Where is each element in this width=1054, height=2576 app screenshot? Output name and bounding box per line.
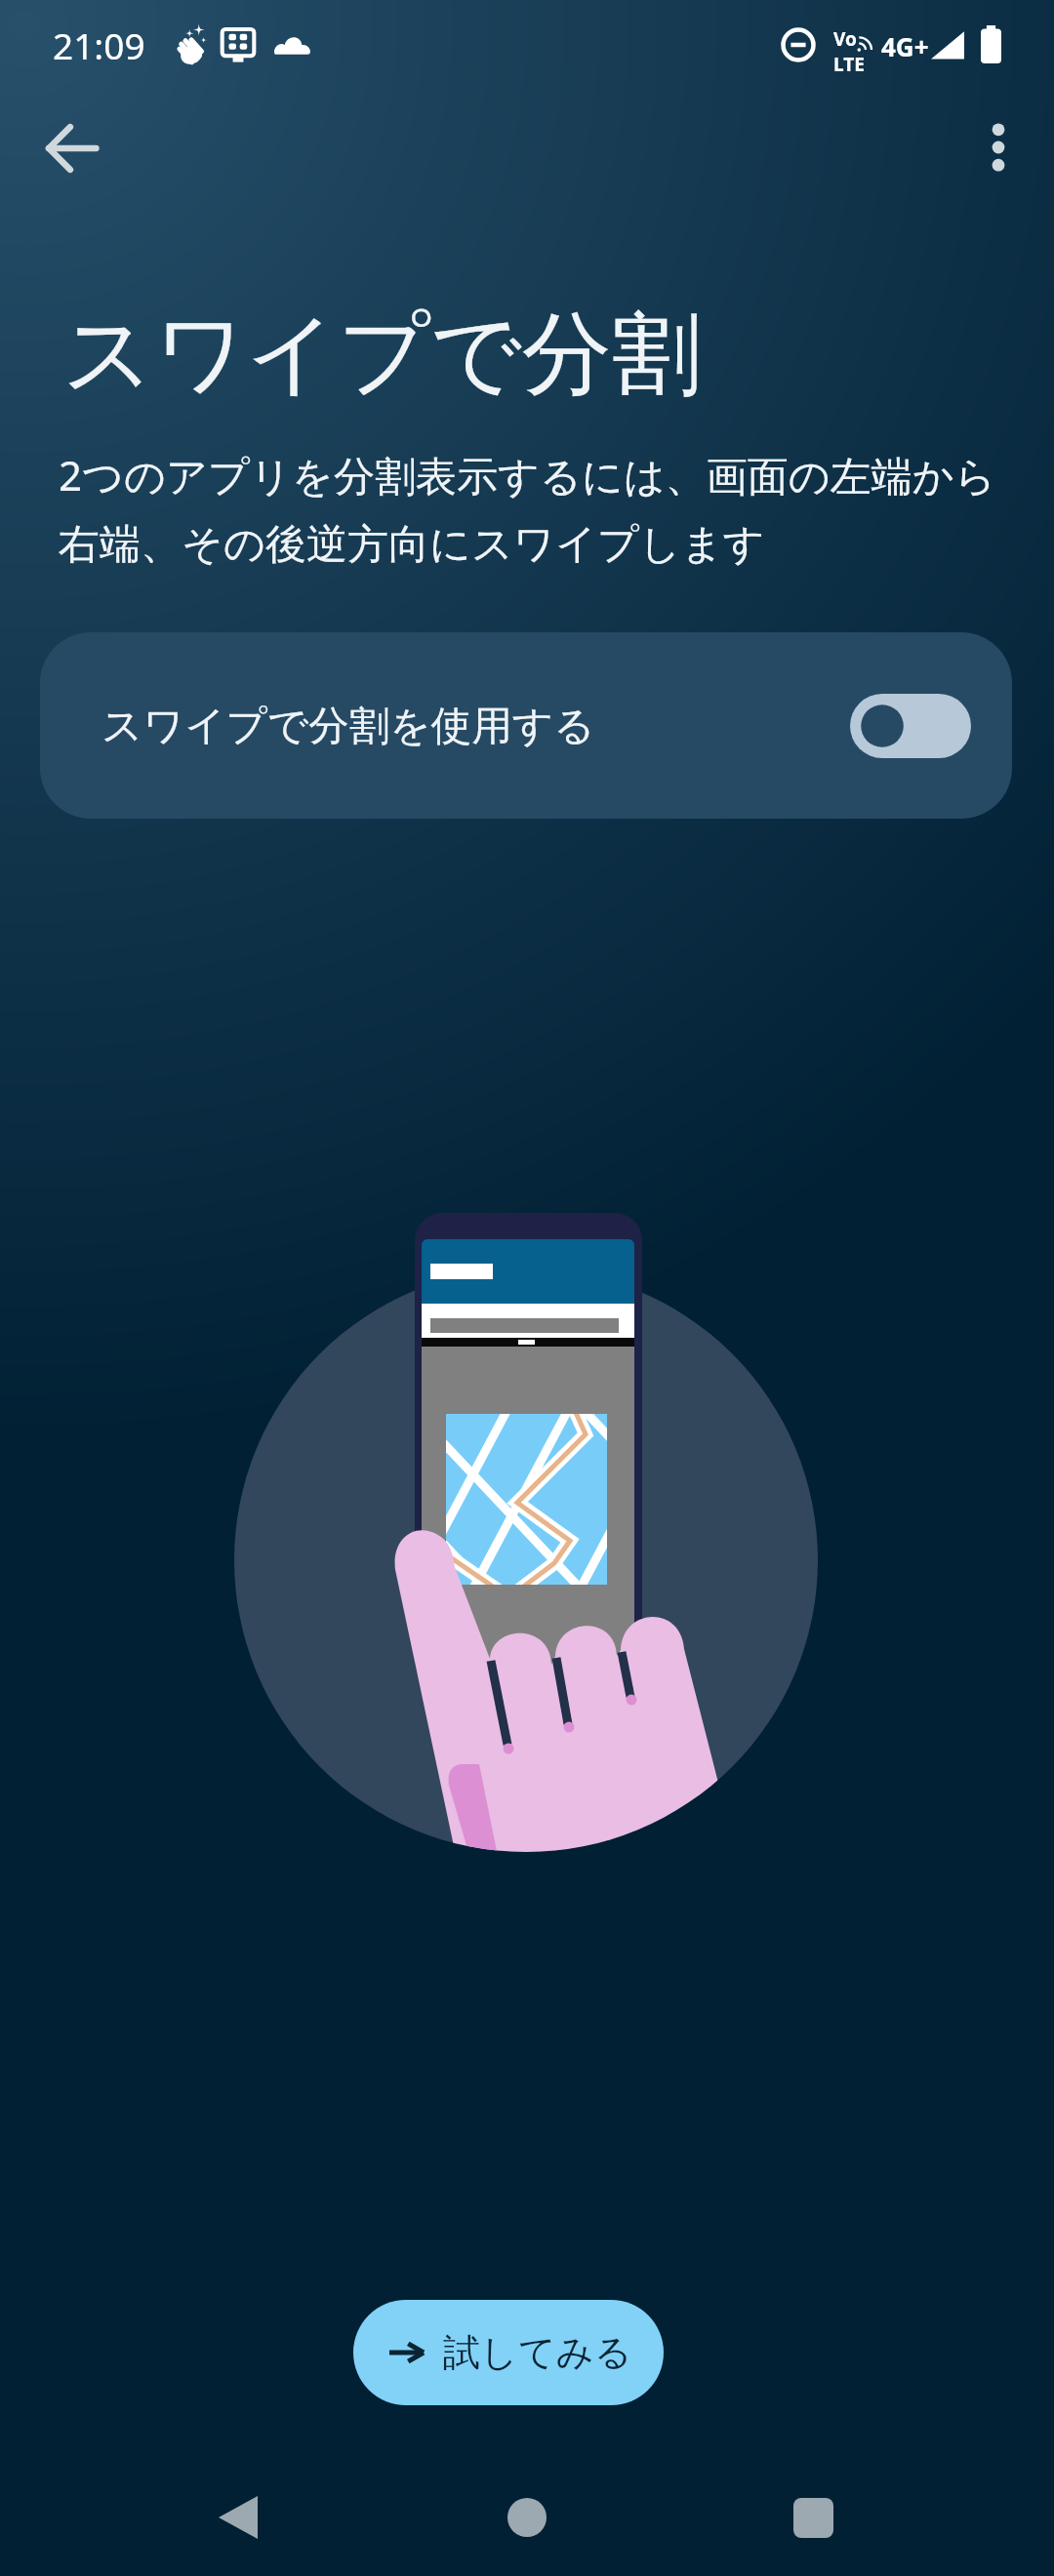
button[interactable]: Back (25, 101, 119, 195)
button[interactable]: Recent apps (754, 2459, 872, 2576)
button[interactable]: More options (953, 101, 1044, 193)
staticText: LTE (833, 52, 865, 77)
staticText: スワイプで分割を使用する (101, 701, 595, 751)
button[interactable]: スワイプで分割を使用する (40, 632, 1012, 819)
button[interactable]: Home (468, 2459, 586, 2576)
staticText: 21:09 (53, 20, 145, 69)
staticText: 4G+ (881, 29, 929, 63)
staticText: 2つのアプリを分割表示するには、画面の左端から右端、その後逆方向にスワイプします (59, 447, 1034, 570)
staticText: 試してみる (443, 2329, 632, 2376)
staticText: スワイプで分割 (62, 298, 702, 411)
button[interactable]: Back (180, 2459, 297, 2576)
button[interactable]: 試してみる (353, 2300, 664, 2405)
staticText: Vo (833, 26, 857, 52)
